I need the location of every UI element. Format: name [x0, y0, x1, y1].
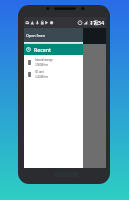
- staticText: Internal storage 3.58GB free: [35, 58, 53, 67]
- button[interactable]: Open from: [24, 28, 83, 44]
- staticText: Open from: [26, 33, 45, 38]
- button[interactable]: Recent: [24, 44, 83, 55]
- staticText: 17:34: [90, 19, 105, 26]
- button[interactable]: Internal storage 3.58GB free: [24, 56, 83, 68]
- staticText: SD card 3.42GB free: [35, 70, 48, 79]
- staticText: Recent: [34, 46, 52, 53]
- button[interactable]: SD card 3.42GB free: [24, 68, 83, 80]
